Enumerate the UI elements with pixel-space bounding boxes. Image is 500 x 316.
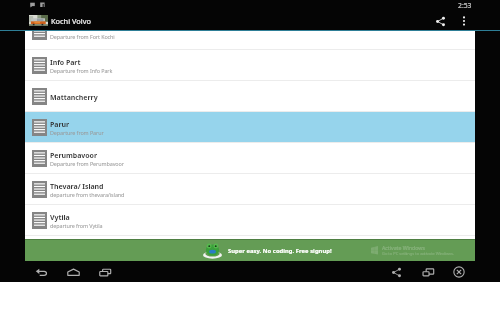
staticText: departure from thevara/island [50, 191, 125, 198]
button[interactable]: Thevara/ Island [25, 174, 475, 205]
staticText: Kochi Volvo [51, 16, 91, 26]
button[interactable]: More options [455, 12, 473, 30]
staticText: departure from Vytila [50, 222, 103, 229]
staticText: Vytila [50, 213, 70, 223]
staticText: Perumbavoor [50, 151, 97, 161]
button[interactable]: Share [431, 12, 449, 30]
staticText: Go to PC settings to activate Windows. [382, 251, 454, 256]
staticText: Departure from Fort Kochi [50, 33, 115, 40]
button[interactable]: Mattancherry [25, 81, 475, 112]
button[interactable]: Home [65, 264, 81, 280]
staticText: Departure from Perumbavoor [50, 160, 124, 167]
button[interactable]: Activate Windows [25, 239, 475, 261]
staticText: Super easy. No coding. Free signup! [228, 247, 332, 255]
button[interactable]: Parur [25, 112, 475, 143]
staticText: Mattancherry [50, 93, 98, 103]
staticText: Departure from Info Park [50, 67, 113, 74]
staticText: Activate Windows [382, 244, 425, 251]
button[interactable]: Perumbavoor [25, 143, 475, 174]
button[interactable]: Screenshot [420, 264, 436, 280]
button[interactable]: Share [388, 264, 404, 280]
button[interactable]: Back [33, 264, 49, 280]
staticText: Departure from Parur [50, 129, 104, 136]
button[interactable]: Info Part [25, 50, 475, 81]
staticText: Thevara/ Island [50, 182, 104, 192]
staticText: Info Part [50, 58, 81, 68]
button[interactable]: Fort Kochi [25, 31, 475, 41]
button[interactable]: Vytila [25, 205, 475, 236]
staticText: 2:53 [458, 1, 472, 10]
button[interactable]: Close [451, 264, 467, 280]
staticText: Parur [50, 120, 70, 130]
button[interactable]: Recent apps [97, 264, 113, 280]
